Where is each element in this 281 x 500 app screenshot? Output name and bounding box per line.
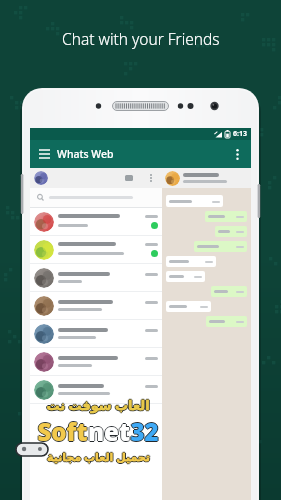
staticText: تحميل العاب مجانية bbox=[47, 450, 150, 465]
staticText: 6:13 bbox=[233, 129, 247, 139]
button[interactable] bbox=[166, 271, 205, 282]
button[interactable] bbox=[30, 236, 162, 264]
button[interactable] bbox=[30, 292, 162, 320]
button[interactable] bbox=[194, 241, 247, 252]
staticText: تحميل العاب مجانية bbox=[47, 448, 150, 463]
button[interactable] bbox=[30, 264, 162, 292]
button[interactable] bbox=[30, 208, 162, 236]
button[interactable] bbox=[166, 195, 223, 207]
staticText: Soft bbox=[37, 414, 88, 447]
staticText: العاب سوفت نت bbox=[45, 396, 149, 414]
staticText: العاب سوفت نت bbox=[46, 395, 150, 413]
staticText: 32 bbox=[131, 415, 160, 448]
staticText: تحميل العاب مجانية bbox=[46, 449, 149, 464]
button[interactable]: More options bbox=[228, 145, 246, 163]
staticText: Soft bbox=[37, 415, 88, 448]
button[interactable] bbox=[30, 376, 162, 404]
button[interactable]: Profile bbox=[34, 171, 48, 185]
staticText: Soft bbox=[38, 415, 89, 448]
staticText: Soft bbox=[36, 415, 87, 448]
button[interactable] bbox=[166, 301, 211, 312]
staticText: العاب سوفت نت bbox=[47, 396, 151, 414]
staticText: تحميل العاب مجانية bbox=[47, 449, 150, 464]
staticText: net bbox=[88, 415, 130, 448]
staticText: 32 bbox=[130, 414, 159, 447]
button[interactable] bbox=[30, 320, 162, 348]
button[interactable] bbox=[206, 316, 247, 327]
staticText: Whats Web bbox=[57, 147, 114, 161]
button[interactable]: Menu bbox=[144, 171, 158, 185]
button[interactable]: Status bbox=[122, 171, 136, 185]
staticText: Chat with your Friends bbox=[62, 28, 220, 49]
button[interactable]: Open navigation menu bbox=[34, 144, 54, 164]
button[interactable] bbox=[162, 168, 251, 188]
button[interactable] bbox=[211, 286, 247, 297]
staticText: تحميل العاب مجانية bbox=[48, 449, 151, 464]
button[interactable] bbox=[30, 348, 162, 376]
staticText: Soft bbox=[37, 416, 88, 449]
button[interactable] bbox=[166, 256, 216, 267]
staticText: net bbox=[88, 414, 130, 447]
staticText: 32 bbox=[130, 415, 159, 448]
button[interactable] bbox=[205, 211, 247, 222]
staticText: 32 bbox=[130, 416, 159, 449]
button[interactable] bbox=[215, 226, 247, 237]
staticText: العاب سوفت نت bbox=[46, 397, 150, 415]
staticText: 32 bbox=[129, 415, 158, 448]
staticText: net bbox=[87, 415, 129, 448]
staticText: net bbox=[89, 415, 131, 448]
staticText: العاب سوفت نت bbox=[46, 396, 150, 414]
button[interactable] bbox=[30, 188, 162, 207]
staticText: net bbox=[88, 416, 130, 449]
